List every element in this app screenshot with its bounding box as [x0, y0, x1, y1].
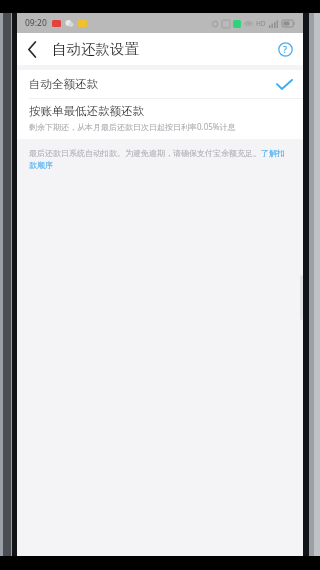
- staticText: 剩余下期还，从本月最后还款日次日起按日利率0.05%计息: [29, 121, 236, 132]
- staticText: 按账单最低还款额还款: [29, 104, 144, 118]
- button[interactable]: Help: [272, 36, 298, 62]
- button[interactable]: 自动全额还款: [17, 70, 303, 98]
- staticText: 09:20: [25, 17, 47, 29]
- staticText: ?: [283, 43, 288, 55]
- button[interactable]: 按账单最低还款额还款: [17, 99, 303, 139]
- staticText: 自动还款设置: [52, 40, 139, 58]
- staticText: HD: [256, 19, 266, 28]
- staticText: 自动全额还款: [29, 77, 98, 91]
- button[interactable]: Back: [17, 33, 47, 65]
- staticText: 最后还款日系统自动扣款。为避免逾期，请确保支付宝余额充足。了解扣款顺序: [29, 148, 285, 170]
